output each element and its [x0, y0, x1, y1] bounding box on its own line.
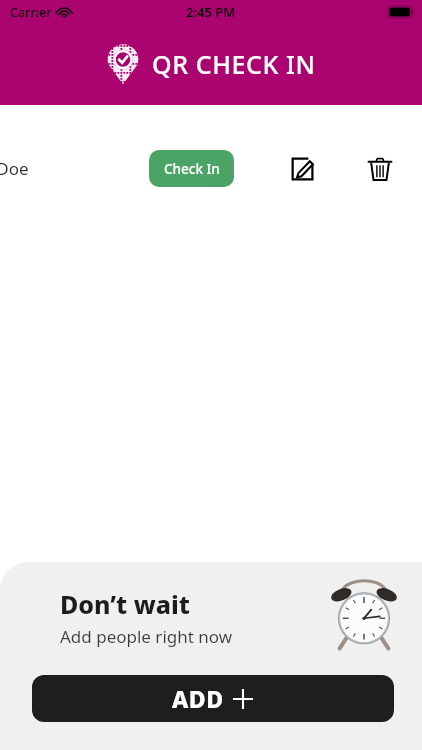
button[interactable]: ADD	[32, 675, 394, 722]
staticText: Add people right now	[60, 625, 233, 648]
staticText: Don’t wait	[60, 587, 190, 621]
button[interactable]: John Doe	[0, 131, 252, 205]
button[interactable]: Check In	[149, 150, 234, 187]
staticText: QR CHECK IN	[152, 47, 316, 81]
staticText: ADD	[172, 683, 224, 714]
button[interactable]: Edit	[274, 141, 330, 197]
staticText: Carrier	[10, 4, 52, 21]
staticText: 2:45 PM	[186, 3, 236, 21]
button[interactable]: Delete	[352, 141, 408, 197]
staticText: Check In	[164, 160, 220, 178]
staticText: John Doe	[0, 157, 29, 180]
